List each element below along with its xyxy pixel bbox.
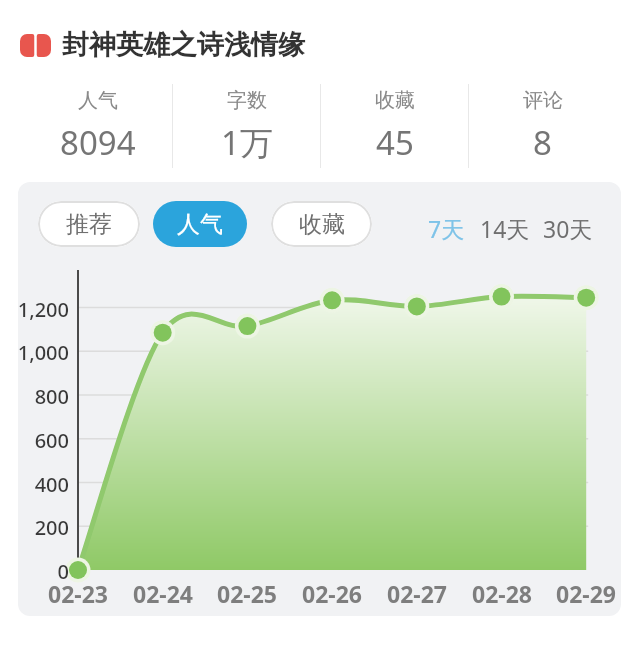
staticText: 0	[18, 558, 69, 585]
staticText: 02-24	[120, 578, 206, 609]
staticText: 600	[18, 427, 69, 454]
button[interactable]: 7天	[428, 213, 465, 244]
button[interactable]: 封神英雄之诗浅情缘	[20, 28, 305, 62]
staticText: 8094	[60, 120, 136, 165]
button[interactable]: 14天	[480, 213, 530, 244]
button[interactable]: 收藏	[271, 201, 372, 247]
staticText: 人气	[78, 88, 118, 113]
staticText: 30天	[543, 213, 593, 244]
staticText: 02-29	[543, 578, 621, 609]
staticText: 1,200	[18, 296, 69, 323]
staticText: 人气	[177, 210, 223, 239]
staticText: 02-27	[374, 578, 460, 609]
staticText: 400	[18, 471, 69, 498]
button[interactable]: 推荐	[38, 201, 140, 247]
staticText: 8	[533, 120, 552, 165]
staticText: 200	[18, 514, 69, 541]
staticText: 45	[376, 120, 414, 165]
staticText: 1,000	[18, 339, 69, 366]
staticText: 收藏	[299, 210, 345, 239]
staticText: 02-28	[459, 578, 545, 609]
staticText: 评论	[523, 88, 563, 113]
staticText: 14天	[480, 213, 530, 244]
staticText: 封神英雄之诗浅情缘	[62, 28, 305, 62]
staticText: 02-25	[204, 578, 290, 609]
staticText: 02-23	[35, 578, 121, 609]
staticText: 800	[18, 383, 69, 410]
staticText: 收藏	[375, 88, 415, 113]
button[interactable]: 人气	[153, 201, 247, 247]
staticText: 推荐	[66, 210, 112, 239]
staticText: 7天	[428, 213, 465, 244]
staticText: 02-26	[289, 578, 375, 609]
button[interactable]: 30天	[543, 213, 593, 244]
staticText: 1万	[221, 120, 273, 165]
staticText: 字数	[227, 88, 267, 113]
